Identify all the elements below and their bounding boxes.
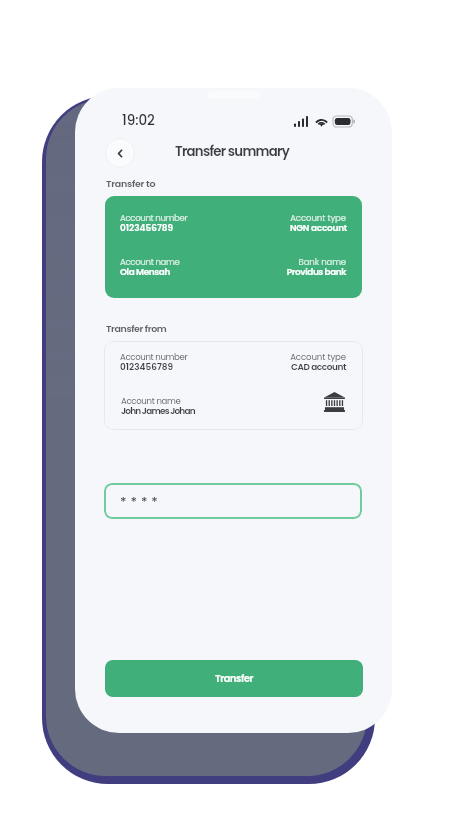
staticText: Bank name bbox=[298, 256, 346, 268]
staticText: 0123456789 bbox=[120, 361, 174, 373]
staticText: Providus bank bbox=[286, 266, 346, 278]
staticText: Account name bbox=[120, 256, 180, 268]
staticText: 19:02 bbox=[122, 111, 155, 130]
staticText: Transfer summary bbox=[175, 142, 290, 161]
button[interactable] bbox=[104, 341, 363, 430]
button[interactable] bbox=[105, 196, 362, 298]
staticText: John James Johan bbox=[121, 405, 195, 417]
staticText: Account number bbox=[120, 212, 188, 224]
button[interactable]: Transfer bbox=[105, 660, 363, 697]
staticText: Account type bbox=[290, 212, 346, 224]
staticText: Ola Mensah bbox=[120, 266, 170, 278]
other: Bank bbox=[324, 392, 345, 412]
staticText: * * * * bbox=[120, 492, 159, 510]
staticText: CAD account bbox=[291, 361, 346, 373]
staticText: Transfer bbox=[215, 672, 254, 685]
staticText: NGN account bbox=[289, 222, 347, 234]
button[interactable]: Back bbox=[105, 138, 135, 168]
staticText: Account number bbox=[120, 351, 188, 363]
staticText: Account name bbox=[121, 395, 181, 407]
staticText: Transfer to bbox=[106, 177, 156, 190]
staticText: 0123456789 bbox=[120, 222, 174, 234]
staticText: Account type bbox=[290, 351, 346, 363]
button[interactable]: * * * * bbox=[104, 483, 362, 519]
staticText: Transfer from bbox=[106, 322, 167, 335]
